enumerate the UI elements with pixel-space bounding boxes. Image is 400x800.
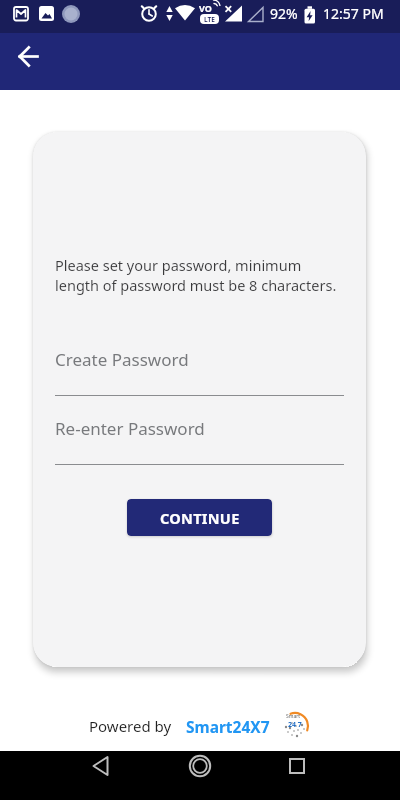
staticText: VO [199, 2, 212, 14]
button[interactable]: Smart24X7 [186, 716, 270, 737]
button[interactable]: Create Password [55, 348, 344, 396]
button[interactable] [265, 754, 329, 778]
staticText: 12:57 PM [323, 4, 384, 23]
staticText: Please set your password, minimum length… [55, 255, 337, 296]
staticText: CONTINUE [160, 508, 240, 528]
button[interactable] [71, 754, 135, 778]
button[interactable]: Re-enter Password [55, 417, 344, 465]
staticText: Create Password [55, 348, 189, 371]
staticText: Smart [286, 713, 301, 720]
staticText: 92% [270, 4, 298, 23]
staticText: Powered by [89, 716, 172, 736]
button[interactable]: CONTINUE [127, 499, 272, 536]
button[interactable] [9, 35, 53, 79]
button[interactable] [168, 754, 232, 778]
staticText: Re-enter Password [55, 417, 205, 440]
staticText: LTE [204, 15, 215, 24]
staticText: 24 7 [288, 720, 302, 730]
